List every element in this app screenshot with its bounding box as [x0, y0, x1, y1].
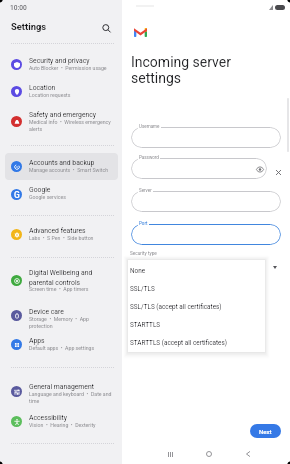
button[interactable]: Show password	[254, 164, 265, 175]
staticText: Language and keyboard • Date and time	[29, 391, 112, 404]
staticText: Safety and emergency	[29, 111, 97, 119]
button[interactable]: SSL/TLS	[126, 280, 263, 298]
button[interactable]	[131, 158, 267, 179]
staticText: Google	[29, 186, 51, 194]
staticText: G	[14, 190, 20, 200]
button[interactable]	[131, 191, 281, 212]
staticText: Location requests	[29, 92, 71, 98]
staticText: Device care	[29, 308, 64, 316]
staticText: Next	[259, 428, 272, 435]
staticText: Storage • Memory • App protection	[29, 316, 89, 329]
button[interactable]: Next	[250, 424, 281, 438]
staticText: Accessibility	[29, 414, 68, 422]
button[interactable]: STARTTLS	[126, 316, 263, 334]
staticText: Accounts and backup	[29, 159, 95, 167]
staticText: SSL/TLS	[130, 285, 155, 293]
button[interactable]	[5, 153, 118, 180]
staticText: Apps	[29, 337, 45, 345]
staticText: Labs • S Pen • Side button	[29, 235, 94, 241]
button[interactable]	[131, 224, 281, 245]
button[interactable]	[131, 127, 281, 148]
staticText: General management	[29, 383, 94, 391]
staticText: Manage accounts • Smart Switch	[29, 167, 109, 173]
staticText: Username	[139, 124, 160, 129]
staticText: Location	[29, 84, 56, 92]
staticText: STARTTLS	[130, 321, 161, 329]
button[interactable]: Recents	[161, 445, 179, 463]
staticText: None	[130, 267, 146, 275]
staticText: Medical info • Wireless emergency alerts	[29, 119, 111, 132]
staticText: Digital Wellbeing and parental controls	[29, 269, 93, 286]
staticText: Password	[139, 155, 159, 160]
staticText: Screen time • App timers	[29, 286, 89, 292]
staticText: SSL/TLS (accept all certificates)	[130, 303, 222, 311]
staticText: Port	[139, 221, 148, 226]
staticText: Default apps • App settings	[29, 345, 95, 351]
staticText: Incoming server settings	[131, 54, 231, 86]
staticText: Auto Blocker • Permission usage	[29, 65, 107, 71]
button[interactable]: SSL/TLS (accept all certificates)	[126, 298, 263, 316]
staticText: Security and privacy	[29, 57, 90, 65]
button[interactable]: STARTTLS (accept all certificates)	[126, 334, 263, 352]
staticText: Advanced features	[29, 227, 86, 235]
button[interactable]: Clear	[272, 166, 284, 178]
staticText: STARTTLS (accept all certificates)	[130, 339, 227, 347]
button[interactable]: Search	[98, 20, 114, 36]
button[interactable]: Home	[200, 445, 218, 463]
button[interactable]: Back	[239, 445, 257, 463]
staticText: Server	[139, 188, 152, 193]
staticText: Settings	[11, 21, 47, 32]
staticText: Google services	[29, 194, 66, 200]
staticText: 10:00	[10, 4, 27, 12]
button[interactable]: None	[126, 262, 263, 280]
button[interactable]: Expand security type	[269, 261, 281, 273]
staticText: Security type	[130, 251, 157, 257]
staticText: Vision • Hearing • Dexterity	[29, 422, 96, 428]
